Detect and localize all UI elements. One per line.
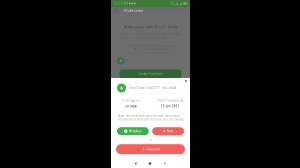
staticText: Profit Links [124,8,143,13]
staticText: Make your own Profit Links [123,24,177,29]
staticText: Copy Link [146,147,159,151]
button[interactable]: My Profit Links & Earnings [124,45,176,53]
button[interactable]: Recents [135,163,137,164]
staticText: 13 Jun 2021 [161,104,180,108]
staticText: Profit Expires [122,99,140,102]
staticText: 4G [170,2,174,5]
staticText: 28 Days [125,104,136,108]
staticText: Share [167,129,174,133]
button[interactable]: WhatsApp [117,127,149,135]
staticText: Profit Credited By [157,99,183,102]
button[interactable]: Create Profit Link [119,69,181,78]
button[interactable]: Share [152,127,184,135]
staticText: or [149,138,152,142]
staticText: Create Profit Link [138,72,162,76]
staticText: WhatsApp [129,129,142,133]
button[interactable]: Close [184,79,188,83]
button[interactable]: Back [163,162,166,165]
button[interactable]: Home [149,162,151,165]
staticText: https://ekart.in/a3D5Y7 fkrt.it/ALSA [128,86,176,90]
button[interactable]: Back [113,7,120,14]
staticText: Share this deal with your friends, when … [118,114,183,121]
button[interactable]: Copy Link [116,144,185,154]
staticText: 10:19 AM [113,2,127,5]
